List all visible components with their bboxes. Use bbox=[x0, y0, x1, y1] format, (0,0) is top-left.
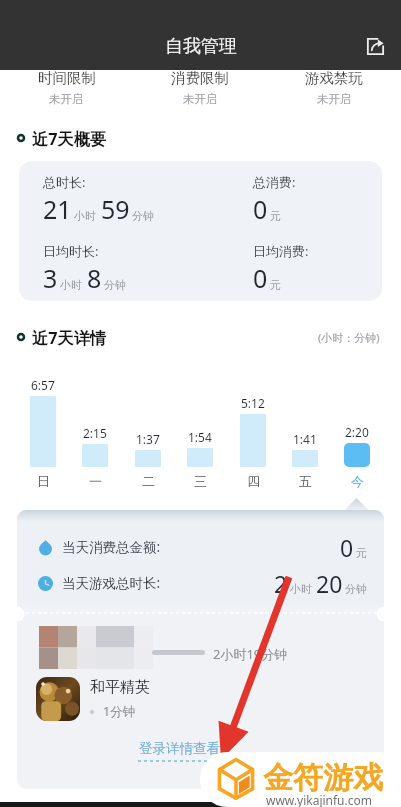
staticText: 金符游戏 bbox=[263, 759, 383, 797]
staticText: 5:12 bbox=[241, 395, 265, 411]
button[interactable]: 1:37 bbox=[122, 374, 174, 489]
staticText: 20 bbox=[316, 568, 343, 599]
button[interactable]: 登录详情查看 bbox=[138, 740, 220, 763]
button[interactable]: 5:12 bbox=[227, 374, 279, 489]
staticText: 游戏禁玩 bbox=[305, 69, 363, 87]
button[interactable]: 2:15 bbox=[69, 374, 121, 489]
staticText: (小时：分钟) bbox=[318, 330, 380, 345]
staticText: 1:41 bbox=[293, 431, 317, 447]
staticText: 1:37 bbox=[136, 431, 160, 447]
staticText: 未开启 bbox=[49, 92, 84, 106]
staticText: 元 bbox=[356, 546, 367, 560]
button[interactable]: 6:57 bbox=[17, 374, 69, 489]
staticText: 2 bbox=[274, 568, 288, 599]
staticText: 1:54 bbox=[188, 429, 212, 445]
staticText: 登录详情查看 bbox=[139, 740, 220, 757]
staticText: 8 bbox=[87, 261, 102, 295]
button[interactable]: 消费限制 bbox=[133, 62, 267, 106]
staticText: 未开启 bbox=[183, 92, 218, 106]
button[interactable]: 1:41 bbox=[279, 374, 331, 489]
staticText: 0 bbox=[253, 192, 268, 226]
staticText: www.yikajinfu.com bbox=[266, 792, 372, 807]
staticText: 二 bbox=[142, 473, 155, 489]
staticText: 今 bbox=[351, 473, 364, 489]
button[interactable]: 时间限制 bbox=[0, 62, 133, 106]
staticText: 总时长: bbox=[43, 173, 86, 191]
staticText: 总消费: bbox=[253, 173, 296, 191]
staticText: 分钟 bbox=[345, 582, 367, 596]
staticText: 小时 bbox=[60, 278, 82, 292]
staticText: 和平精英 bbox=[90, 678, 150, 697]
staticText: 分钟 bbox=[104, 278, 126, 292]
staticText: 元 bbox=[270, 209, 281, 223]
staticText: 一 bbox=[89, 473, 102, 489]
staticText: 0 bbox=[340, 532, 354, 563]
staticText: 四 bbox=[247, 473, 260, 489]
staticText: 59 bbox=[101, 192, 130, 226]
button[interactable]: 2:20 bbox=[331, 374, 383, 489]
staticText: 自我管理 bbox=[165, 35, 237, 58]
button[interactable]: 1:54 bbox=[174, 374, 226, 489]
staticText: 0 bbox=[253, 261, 268, 295]
staticText: 2:20 bbox=[345, 424, 369, 440]
staticText: 当天游戏总时长: bbox=[62, 574, 161, 592]
staticText: 小时 bbox=[74, 209, 96, 223]
staticText: 当天消费总金额: bbox=[62, 538, 161, 556]
staticText: 1分钟 bbox=[103, 703, 136, 720]
staticText: 日均消费: bbox=[253, 242, 309, 260]
button[interactable]: Share bbox=[351, 22, 399, 70]
staticText: 2:15 bbox=[83, 425, 107, 441]
staticText: 2小时19分钟 bbox=[213, 645, 288, 663]
staticText: 小时 bbox=[290, 582, 312, 596]
staticText: 时间限制 bbox=[38, 69, 96, 87]
staticText: 21 bbox=[43, 192, 72, 226]
staticText: 分钟 bbox=[132, 209, 154, 223]
staticText: 日 bbox=[37, 473, 50, 489]
staticText: 3 bbox=[43, 261, 58, 295]
button[interactable]: 和平精英 bbox=[17, 673, 384, 724]
staticText: 近7天详情 bbox=[32, 327, 107, 347]
button[interactable]: 游戏禁玩 bbox=[267, 62, 401, 106]
button[interactable]: 2小时19分钟 bbox=[17, 622, 384, 673]
staticText: 日均时长: bbox=[43, 242, 99, 260]
staticText: 6:57 bbox=[31, 377, 55, 393]
staticText: 消费限制 bbox=[171, 69, 229, 87]
staticText: 未开启 bbox=[317, 92, 352, 106]
staticText: 五 bbox=[299, 473, 312, 489]
staticText: 近7天概要 bbox=[32, 128, 107, 148]
staticText: 元 bbox=[270, 278, 281, 292]
staticText: 三 bbox=[194, 473, 207, 489]
